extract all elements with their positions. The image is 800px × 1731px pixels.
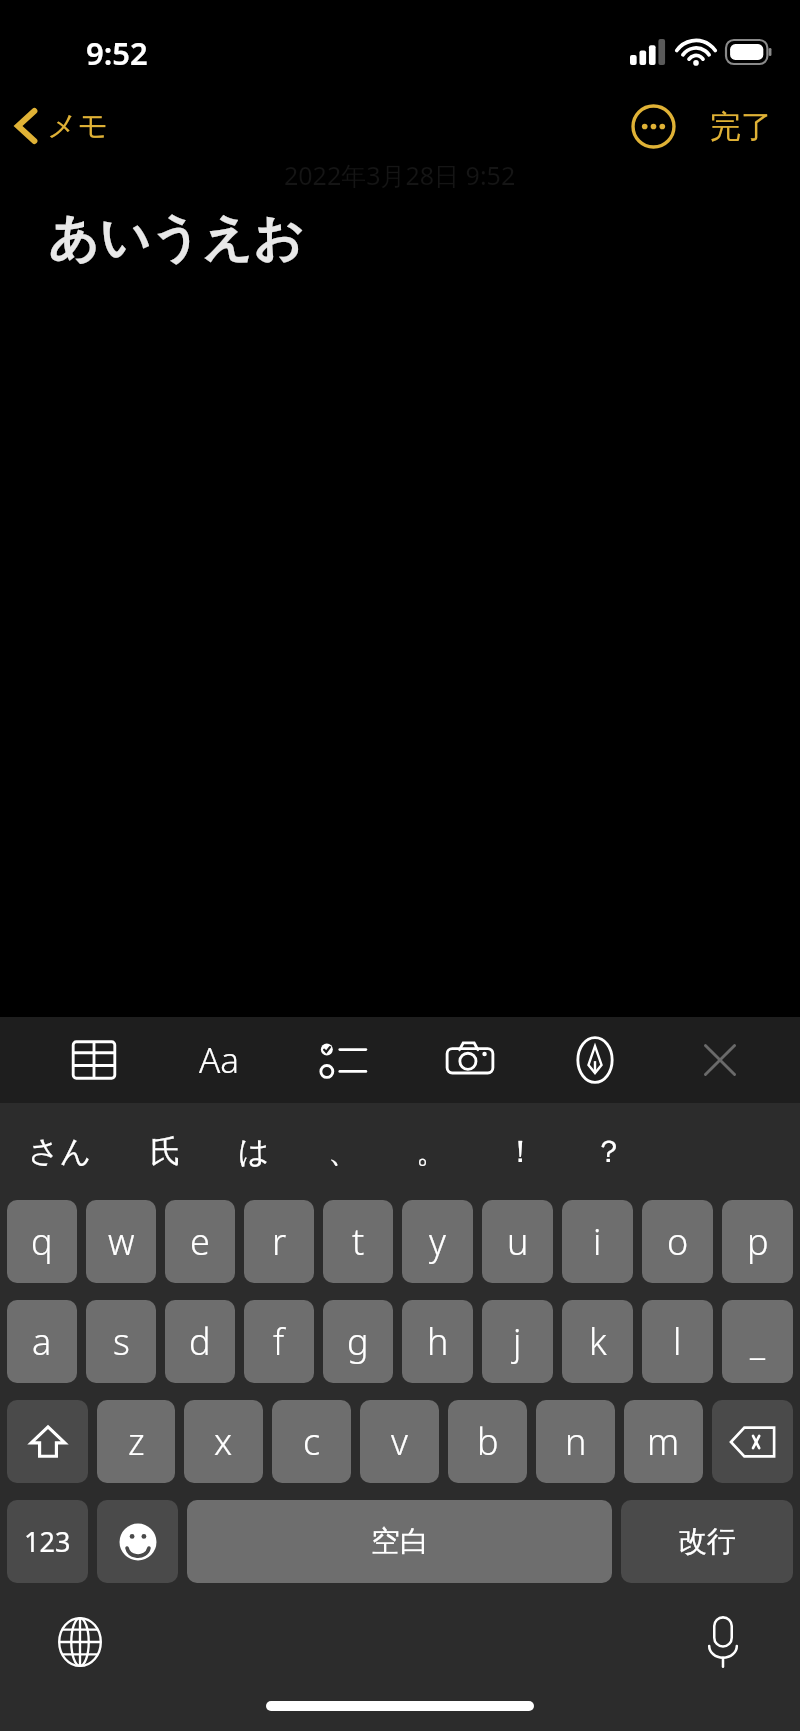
staticText: h [427,1317,449,1366]
staticText: p [747,1217,769,1266]
button[interactable]: 氏 [144,1124,187,1179]
staticText: r [272,1217,287,1266]
button[interactable]: e [165,1200,235,1283]
button[interactable]: Table [58,1024,130,1096]
staticText: w [108,1217,135,1266]
staticText: 完了 [710,107,772,146]
button[interactable]: j [482,1300,553,1383]
button[interactable]: _ [722,1300,793,1383]
staticText: i [593,1217,602,1266]
button[interactable]: s [86,1300,156,1383]
button[interactable]: さん [22,1124,98,1179]
staticText: u [507,1217,529,1266]
button[interactable]: x [184,1400,263,1483]
button[interactable]: k [562,1300,633,1383]
button[interactable]: b [448,1400,527,1483]
staticText: 空白 [371,1523,429,1560]
staticText: l [673,1317,682,1366]
staticText: x [214,1417,233,1466]
staticText: f [273,1317,285,1366]
button[interactable]: m [624,1400,703,1483]
staticText: k [589,1317,607,1366]
staticText: 氏 [150,1132,181,1171]
button[interactable]: Markup [559,1024,631,1096]
button[interactable]: c [272,1400,351,1483]
staticText: v [391,1417,408,1466]
staticText: メモ [47,107,109,145]
staticText: ？ [593,1132,624,1171]
button[interactable]: More options [619,96,688,157]
button[interactable]: i [562,1200,633,1283]
button[interactable]: ！ [499,1124,542,1179]
button[interactable]: 改行 [621,1500,793,1583]
staticText: y [429,1217,446,1266]
button[interactable]: 、 [322,1124,365,1179]
button[interactable]: は [232,1124,276,1179]
button[interactable]: ？ [587,1124,630,1179]
staticText: q [31,1217,53,1266]
staticText: d [189,1317,211,1366]
staticText: 9:52 [86,32,148,74]
button[interactable]: Change keyboard [46,1608,114,1676]
button[interactable]: 123 [7,1500,88,1583]
button[interactable]: g [323,1300,393,1383]
button[interactable]: Emoji [97,1500,178,1583]
button[interactable]: あいうえお [0,207,800,270]
staticText: s [113,1317,130,1366]
button[interactable]: p [722,1200,793,1283]
staticText: 改行 [678,1523,736,1560]
staticText: a [32,1317,52,1366]
button[interactable]: Dictation [692,1606,754,1678]
staticText: は [238,1132,270,1171]
button[interactable]: z [97,1400,175,1483]
button[interactable]: w [86,1200,156,1283]
button[interactable]: Camera [434,1024,506,1096]
staticText: m [647,1417,680,1466]
staticText: さん [28,1132,92,1171]
staticText: ！ [505,1132,536,1171]
button[interactable]: a [7,1300,77,1383]
button[interactable]: q [7,1200,77,1283]
staticText: t [352,1217,365,1266]
button[interactable]: y [402,1200,473,1283]
button[interactable]: 空白 [187,1500,612,1583]
staticText: b [477,1417,499,1466]
button[interactable]: h [402,1300,473,1383]
staticText: o [667,1217,689,1266]
staticText: あいうえお [48,207,304,270]
button[interactable]: Checklist [308,1024,380,1096]
button[interactable]: v [360,1400,439,1483]
button[interactable]: d [165,1300,235,1383]
staticText: 123 [24,1523,71,1560]
staticText: e [190,1217,210,1266]
button[interactable]: Text format [183,1024,255,1096]
button[interactable]: f [244,1300,314,1383]
button[interactable]: n [536,1400,615,1483]
staticText: j [513,1317,522,1366]
staticText: z [128,1417,145,1466]
button[interactable]: メモ [0,101,123,151]
button[interactable]: u [482,1200,553,1283]
staticText: 2022年3月28日 9:52 [284,158,516,192]
staticText: g [347,1317,369,1366]
staticText: c [303,1417,321,1466]
button[interactable]: l [642,1300,713,1383]
staticText: Aa [199,1036,240,1084]
button[interactable]: 。 [410,1124,453,1179]
button[interactable]: Delete [712,1400,793,1483]
button[interactable]: 完了 [700,99,800,154]
button[interactable]: r [244,1200,314,1283]
staticText: _ [750,1317,766,1366]
button[interactable]: Close keyboard [684,1024,756,1096]
staticText: 、 [328,1132,359,1171]
button[interactable]: t [323,1200,393,1283]
button[interactable]: o [642,1200,713,1283]
staticText: n [565,1417,587,1466]
staticText: 。 [416,1132,447,1171]
button[interactable]: Shift [7,1400,88,1483]
